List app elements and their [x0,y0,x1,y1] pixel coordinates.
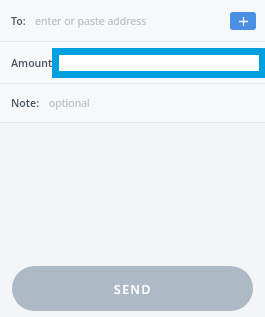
button[interactable]: Note: [0,84,265,122]
staticText: optional [49,96,256,110]
staticText: enter or paste address [35,14,230,28]
button[interactable]: SEND [12,266,253,311]
button[interactable]: Add recipient [230,12,256,30]
staticText: Note: [11,96,40,110]
button[interactable]: Amount: [0,42,265,83]
staticText: SEND [114,281,152,297]
staticText: Amount: [11,56,56,70]
button[interactable]: To: [0,0,265,41]
staticText: To: [11,14,26,28]
